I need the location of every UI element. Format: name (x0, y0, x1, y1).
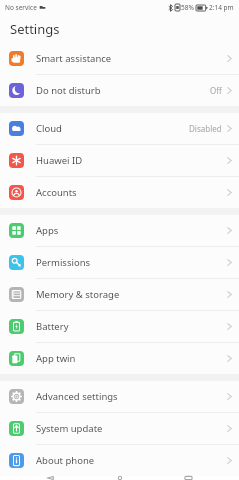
staticText: Smart assistance (36, 52, 112, 65)
button[interactable]: Huawei ID (0, 145, 239, 176)
staticText: Memory & storage (36, 288, 120, 301)
button[interactable]: Home (103, 476, 137, 480)
button[interactable]: Accounts (0, 177, 239, 208)
staticText: Advanced settings (36, 390, 118, 403)
staticText: About phone (36, 454, 95, 467)
button[interactable]: Recent apps (171, 476, 205, 480)
button[interactable]: Back (34, 476, 68, 480)
button[interactable]: Do not disturb (0, 75, 239, 106)
staticText: Disabled (189, 123, 222, 134)
button[interactable]: Memory & storage (0, 279, 239, 310)
staticText: App twin (36, 352, 76, 365)
button[interactable]: About phone (0, 445, 239, 476)
staticText: Off (210, 85, 222, 96)
staticText: Battery (36, 320, 69, 333)
button[interactable]: Permissions (0, 247, 239, 278)
staticText: System update (36, 422, 103, 435)
staticText: Settings (10, 20, 60, 38)
button[interactable]: App twin (0, 343, 239, 374)
button[interactable]: System update (0, 413, 239, 444)
staticText: Do not disturb (36, 84, 101, 97)
button[interactable]: Cloud (0, 113, 239, 144)
staticText: No service (5, 3, 37, 12)
staticText: Huawei ID (36, 154, 83, 167)
button[interactable]: Battery (0, 311, 239, 342)
staticText: 58% (181, 3, 194, 12)
button[interactable]: Apps (0, 215, 239, 246)
staticText: Apps (36, 224, 59, 237)
staticText: 2:14 pm (209, 3, 234, 12)
staticText: Cloud (36, 122, 62, 135)
button[interactable]: Advanced settings (0, 381, 239, 412)
staticText: Accounts (36, 186, 77, 199)
staticText: Permissions (36, 256, 91, 269)
button[interactable]: Smart assistance (0, 43, 239, 74)
